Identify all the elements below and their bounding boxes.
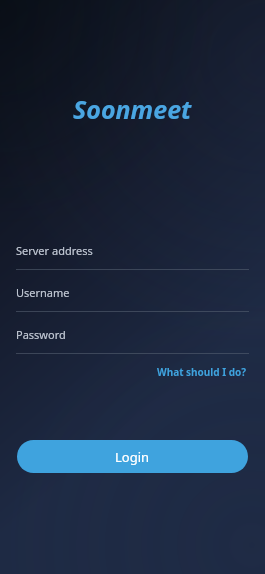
staticText: Soonmeet	[73, 92, 192, 126]
button[interactable]: What should I do?	[155, 362, 249, 382]
button[interactable]: Password	[16, 324, 249, 354]
button[interactable]: Login	[17, 440, 248, 473]
button[interactable]: Username	[16, 282, 249, 312]
button[interactable]: Server address	[16, 240, 249, 270]
staticText: Login	[115, 448, 150, 466]
staticText: Username	[16, 285, 70, 300]
staticText: Password	[16, 327, 66, 342]
staticText: What should I do?	[157, 365, 247, 379]
staticText: Server address	[16, 243, 93, 258]
